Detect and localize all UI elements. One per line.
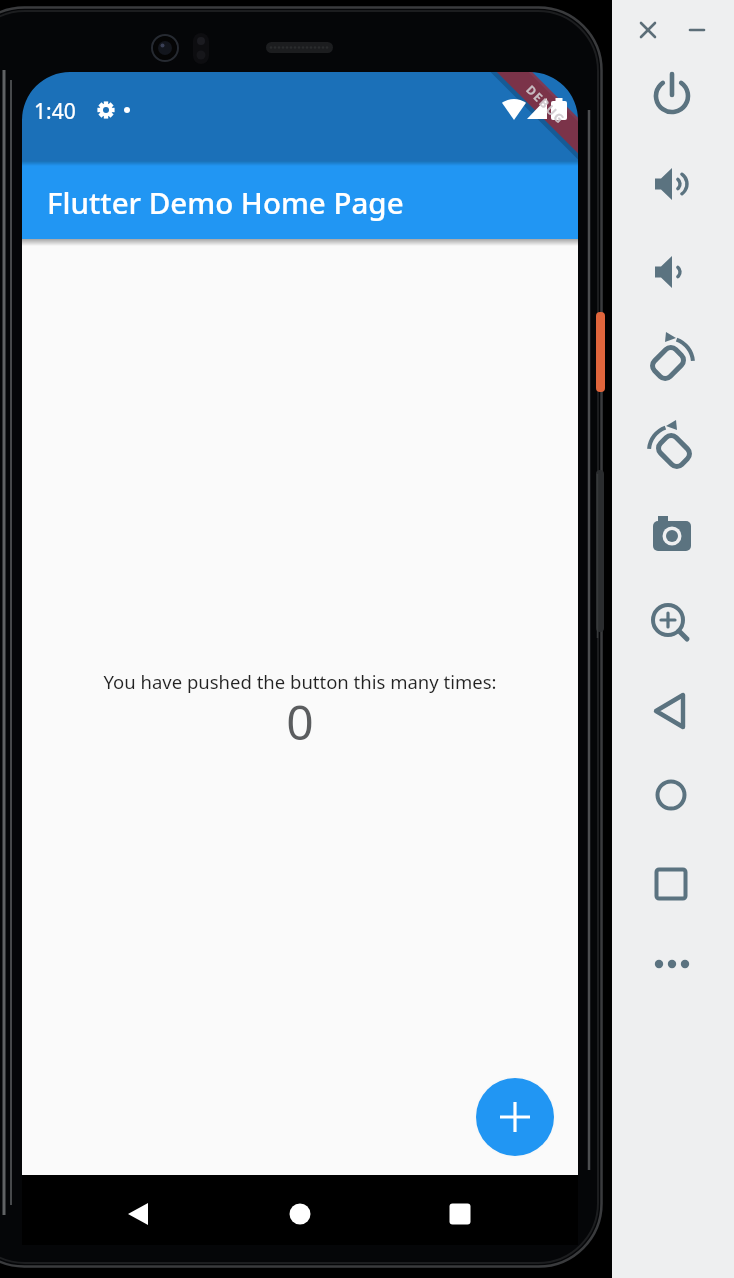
button[interactable]: [476, 1078, 554, 1156]
staticText: 1:40: [34, 97, 76, 126]
button[interactable]: [642, 594, 694, 646]
button[interactable]: [644, 685, 696, 737]
button[interactable]: [643, 246, 695, 298]
button[interactable]: [633, 15, 663, 45]
staticText: Flutter Demo Home Page: [47, 182, 404, 222]
button[interactable]: [646, 510, 698, 562]
staticText: DEBUG: [523, 81, 569, 127]
button[interactable]: [643, 158, 695, 210]
button[interactable]: [645, 858, 697, 910]
button[interactable]: [643, 332, 699, 388]
button[interactable]: [682, 15, 712, 45]
button[interactable]: [645, 769, 697, 821]
staticText: You have pushed the button this many tim…: [22, 669, 578, 694]
button[interactable]: [646, 70, 698, 122]
button[interactable]: [646, 938, 698, 990]
button[interactable]: [105, 1181, 171, 1245]
button[interactable]: [427, 1181, 493, 1245]
staticText: 0: [22, 689, 578, 754]
button[interactable]: [643, 420, 699, 476]
button[interactable]: [267, 1181, 333, 1245]
